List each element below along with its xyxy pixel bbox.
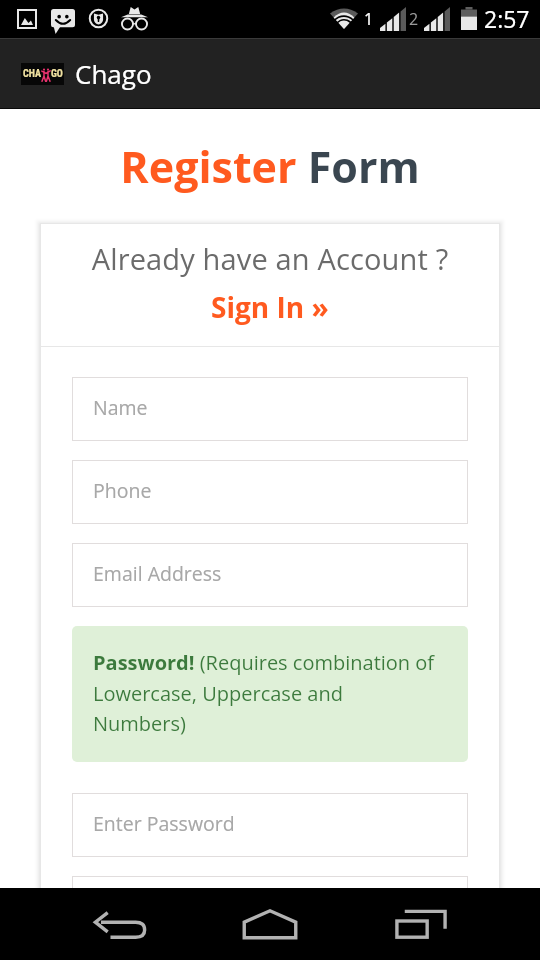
button[interactable]: Name [72,377,468,441]
button[interactable]: Home [234,888,306,960]
staticText: Chago [75,56,152,91]
button[interactable]: Enter Password [72,793,468,857]
button[interactable]: Phone [72,460,468,524]
staticText: GO [51,68,63,80]
staticText: Register Form [0,137,540,196]
staticText: CHA [23,68,41,80]
staticText: Email Address [93,560,222,587]
button[interactable]: Confirm Password [72,876,468,940]
staticText: Phone [93,477,152,504]
staticText: 1 [364,8,374,30]
staticText: Sign In » [211,288,329,326]
staticText: Password! (Requires combination of Lower… [93,649,435,736]
staticText: 2 [409,8,419,30]
staticText: Enter Password [93,810,235,837]
button[interactable]: Recent apps [385,888,457,960]
staticText: Confirm Password [93,893,260,920]
button[interactable]: Sign In » [40,284,500,330]
button[interactable]: Back [84,888,156,960]
staticText: 2:57 [484,3,530,34]
staticText: Already have an Account ? [40,239,500,278]
staticText: Name [93,394,148,421]
button[interactable]: Email Address [72,543,468,607]
